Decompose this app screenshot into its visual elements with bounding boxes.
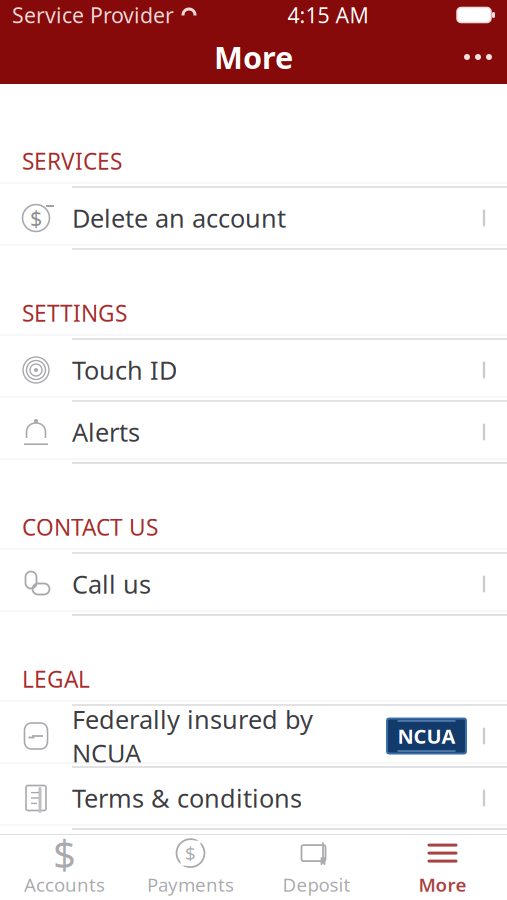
staticText: Payments: [147, 872, 234, 897]
staticText: More: [418, 872, 466, 897]
staticText: Touch ID: [72, 353, 177, 387]
staticText: $: [30, 204, 42, 232]
button[interactable]: Deposit: [253, 836, 379, 898]
button[interactable]: More options: [449, 35, 507, 79]
button[interactable]: Touch ID: [0, 340, 507, 402]
staticText: Delete an account: [72, 201, 286, 235]
button[interactable]: More: [379, 836, 505, 898]
staticText: CONTACT US: [22, 512, 158, 542]
button[interactable]: $: [1, 836, 127, 898]
staticText: Deposit: [282, 872, 350, 897]
button[interactable]: Terms & conditions: [0, 768, 507, 830]
staticText: Call us: [72, 567, 151, 601]
button[interactable]: Alerts: [0, 402, 507, 464]
staticText: Terms & conditions: [72, 781, 302, 815]
staticText: $: [185, 841, 196, 865]
staticText: 4:15 AM: [287, 1, 368, 29]
staticText: More: [214, 37, 293, 77]
staticText: Federally insured by NCUA: [72, 702, 313, 770]
button[interactable]: Federally insured by NCUA: [0, 706, 507, 768]
button[interactable]: Call us: [0, 554, 507, 616]
staticText: NCUA: [397, 723, 455, 749]
staticText: $: [53, 826, 76, 880]
staticText: LEGAL: [22, 664, 90, 694]
staticText: Service Provider: [12, 1, 174, 29]
staticText: SETTINGS: [22, 298, 127, 328]
staticText: Accounts: [24, 872, 105, 897]
staticText: SERVICES: [22, 146, 122, 176]
button[interactable]: $: [0, 188, 507, 250]
staticText: Alerts: [72, 415, 140, 449]
button[interactable]: $: [127, 836, 253, 898]
